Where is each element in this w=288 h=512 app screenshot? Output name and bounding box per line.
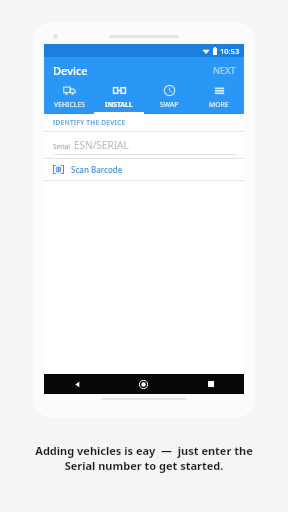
button[interactable]: Recents (177, 374, 244, 394)
button[interactable]: VEHICLES (44, 83, 94, 114)
staticText: NEXT (213, 64, 236, 76)
staticText: Serial (53, 142, 70, 151)
staticText: 10:53 (220, 46, 240, 56)
button[interactable]: SWAP (144, 83, 194, 114)
button[interactable]: MORE (194, 83, 244, 114)
button[interactable]: Back (44, 374, 110, 394)
button[interactable]: INSTALL (94, 83, 144, 114)
button[interactable]: Serial (44, 132, 244, 158)
staticText: Adding vehicles is eay — just enter the … (28, 443, 260, 473)
staticText: Device (53, 63, 88, 78)
staticText: VEHICLES (54, 100, 85, 109)
staticText: INSTALL (105, 100, 133, 109)
staticText: MORE (209, 100, 229, 109)
button[interactable]: Scan Barcode (44, 159, 244, 180)
staticText: SWAP (160, 100, 179, 109)
button[interactable]: Home (110, 374, 177, 394)
button[interactable]: NEXT (205, 58, 244, 82)
staticText: ESN/SERIAL (74, 138, 129, 152)
staticText: Scan Barcode (71, 164, 123, 175)
staticText: IDENTIFY THE DEVICE (53, 118, 126, 127)
other: Scan Barcode (53, 165, 64, 174)
